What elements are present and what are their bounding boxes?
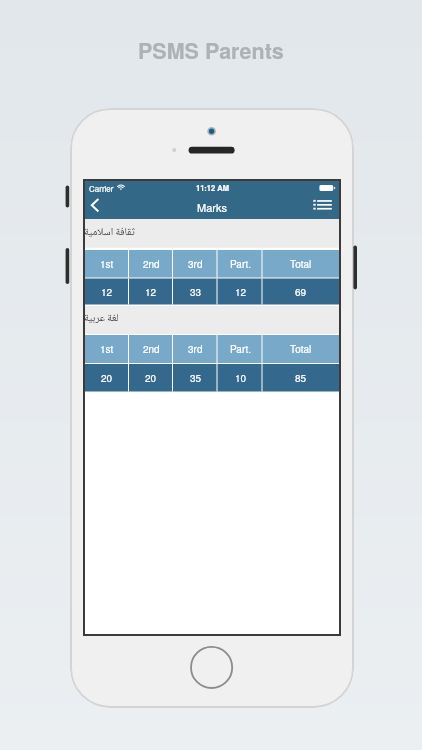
staticText: لغة عربية <box>84 310 119 328</box>
staticText: 1st <box>100 257 114 271</box>
button[interactable]: 12 <box>85 279 129 305</box>
button[interactable]: Total <box>263 250 339 278</box>
staticText: 12 <box>145 285 157 299</box>
staticText: 85 <box>295 371 307 385</box>
staticText: 12 <box>101 285 113 299</box>
button[interactable]: Part. <box>218 250 263 278</box>
staticText: Part. <box>230 342 252 356</box>
button[interactable]: 3rd <box>173 335 218 363</box>
staticText: 33 <box>190 285 202 299</box>
button[interactable]: 20 <box>129 364 173 392</box>
staticText: PSMS Parents <box>138 35 284 66</box>
button[interactable]: Menu <box>309 195 339 219</box>
staticText: 2nd <box>143 257 160 271</box>
button[interactable]: 1st <box>85 250 129 278</box>
button[interactable]: 85 <box>263 364 339 392</box>
staticText: Total <box>290 257 312 271</box>
staticText: 69 <box>295 285 307 299</box>
staticText: 3rd <box>188 342 203 356</box>
staticText: Part. <box>230 257 252 271</box>
button[interactable]: 35 <box>173 364 218 392</box>
staticText: 20 <box>101 371 113 385</box>
staticText: 12 <box>235 285 247 299</box>
staticText: ثقافة اسلامية <box>84 224 135 242</box>
button[interactable]: 10 <box>218 364 263 392</box>
staticText: Marks <box>197 199 227 215</box>
staticText: 20 <box>145 371 157 385</box>
button[interactable]: لغة عربية <box>85 306 339 334</box>
staticText: 1st <box>100 342 114 356</box>
staticText: 35 <box>190 371 202 385</box>
button[interactable]: 2nd <box>129 250 173 278</box>
staticText: 10 <box>235 371 247 385</box>
button[interactable]: Part. <box>218 335 263 363</box>
staticText: 3rd <box>188 257 203 271</box>
button[interactable]: 12 <box>218 279 263 305</box>
staticText: Total <box>290 342 312 356</box>
button[interactable]: ثقافة اسلامية <box>85 219 339 248</box>
button[interactable]: 3rd <box>173 250 218 278</box>
button[interactable]: Back <box>85 195 111 219</box>
button[interactable]: 33 <box>173 279 218 305</box>
button[interactable]: Total <box>263 335 339 363</box>
staticText: 2nd <box>143 342 160 356</box>
button[interactable]: 69 <box>263 279 339 305</box>
button[interactable]: 20 <box>85 364 129 392</box>
staticText: Carrier <box>89 183 114 194</box>
button[interactable]: 12 <box>129 279 173 305</box>
button[interactable]: 2nd <box>129 335 173 363</box>
button[interactable]: 1st <box>85 335 129 363</box>
staticText: 11:12 AM <box>196 183 229 194</box>
